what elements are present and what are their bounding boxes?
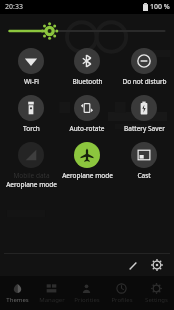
- button[interactable]: Settings: [139, 276, 174, 310]
- button[interactable]: Torch: [3, 94, 59, 134]
- button[interactable]: Cast: [116, 141, 172, 181]
- button[interactable]: Do not disturb: [116, 47, 172, 87]
- staticText: Themes: [6, 296, 29, 304]
- staticText: Mobile data: [13, 171, 50, 180]
- staticText: Priorities: [74, 296, 100, 304]
- button[interactable]: Aeroplane mode: [59, 141, 115, 181]
- staticText: Aeroplane mode: [6, 180, 57, 189]
- staticText: Wi-Fi: [24, 77, 39, 86]
- staticText: Manager: [39, 296, 65, 304]
- button[interactable]: [0, 23, 174, 39]
- button[interactable]: Priorities: [69, 276, 104, 310]
- button[interactable]: Bluetooth: [59, 47, 115, 87]
- staticText: Aeroplane mode: [62, 171, 113, 180]
- button[interactable]: Profiles: [104, 276, 139, 310]
- button[interactable]: Themes: [0, 276, 34, 310]
- button[interactable]: Battery Saver: [116, 94, 172, 134]
- button[interactable]: Wi-Fi: [3, 47, 59, 87]
- staticText: Settings: [145, 296, 168, 304]
- staticText: Cast: [137, 171, 151, 180]
- button[interactable]: Settings: [148, 256, 166, 274]
- button[interactable]: Manager: [34, 276, 69, 310]
- staticText: Torch: [23, 124, 40, 133]
- staticText: Battery Saver: [124, 124, 165, 133]
- staticText: Do not disturb: [122, 77, 167, 86]
- button[interactable]: Auto-rotate: [59, 94, 115, 134]
- button[interactable]: Mobile data: [3, 141, 59, 190]
- staticText: Bluetooth: [72, 77, 103, 86]
- staticText: 20:33: [5, 2, 23, 12]
- staticText: Profiles: [111, 296, 133, 304]
- button[interactable]: Edit tiles: [124, 256, 142, 274]
- staticText: 100 %: [150, 2, 170, 12]
- staticText: Auto-rotate: [69, 124, 105, 133]
